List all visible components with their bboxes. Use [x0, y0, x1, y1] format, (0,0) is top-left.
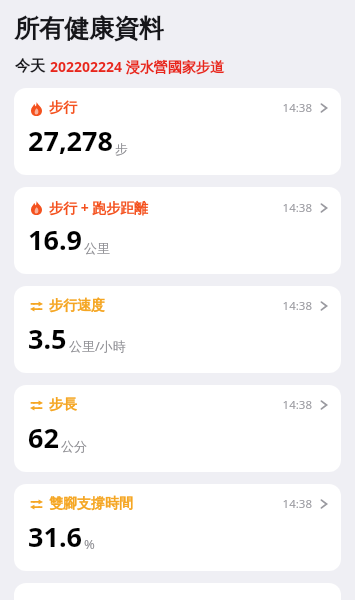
button[interactable]: 步行 + 跑步距離: [14, 187, 341, 274]
button[interactable]: 雙腳支撐時間: [14, 484, 341, 571]
staticText: 14:38: [282, 496, 312, 512]
other: 顯示詳細資料: [320, 101, 328, 115]
staticText: 步行 + 跑步距離: [49, 198, 149, 217]
button[interactable]: 步行速度: [14, 286, 341, 373]
other: 顯示詳細資料: [320, 299, 328, 313]
staticText: 公里: [84, 240, 110, 256]
staticText: 所有健康資料: [14, 13, 164, 44]
staticText: 公里/小時: [69, 337, 126, 355]
button[interactable]: 步行: [14, 88, 341, 175]
staticText: 步行: [49, 99, 77, 117]
staticText: 步長: [49, 396, 77, 414]
staticText: 14:38: [282, 200, 312, 216]
staticText: %: [84, 535, 95, 553]
staticText: 14:38: [282, 397, 312, 413]
staticText: 31.6: [28, 518, 82, 555]
staticText: 62: [28, 419, 59, 456]
staticText: 3.5: [28, 320, 67, 357]
button[interactable]: 步長: [14, 385, 341, 472]
other: 顯示詳細資料: [320, 497, 328, 511]
staticText: 202202224 浸水營國家步道: [50, 57, 224, 76]
staticText: 14:38: [282, 100, 312, 116]
other: 顯示詳細資料: [320, 398, 328, 412]
staticText: 步行速度: [49, 297, 105, 315]
staticText: 公分: [61, 438, 87, 454]
staticText: 今天: [15, 57, 45, 76]
staticText: 14:38: [282, 298, 312, 314]
staticText: 步: [115, 141, 128, 157]
other: 顯示詳細資料: [320, 201, 328, 215]
staticText: 16.9: [28, 221, 82, 258]
staticText: 雙腳支撐時間: [49, 495, 133, 513]
staticText: 27,278: [28, 122, 113, 159]
